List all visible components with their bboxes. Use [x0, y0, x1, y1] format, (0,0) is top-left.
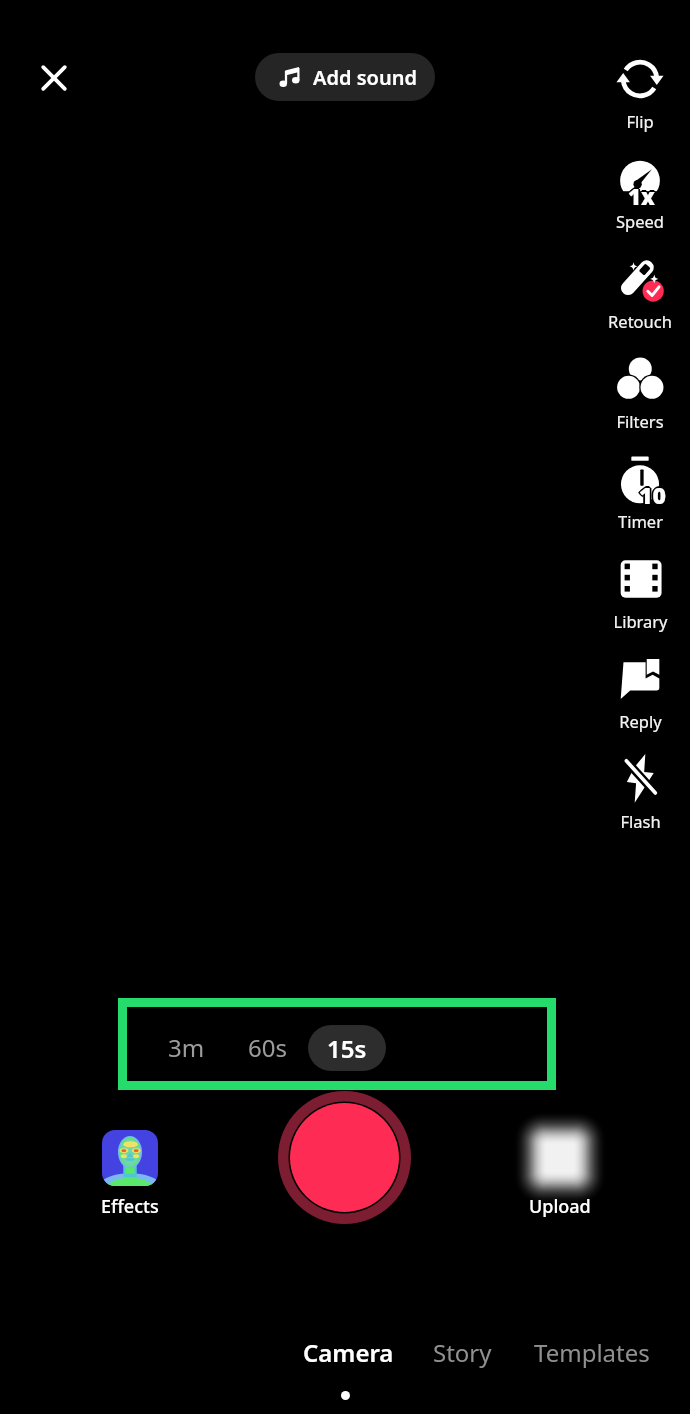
staticText: 15s [327, 1032, 367, 1065]
staticText: Templates [534, 1336, 650, 1369]
staticText: 1x [628, 181, 655, 211]
button[interactable]: Retouch [590, 251, 690, 332]
staticText: Camera [303, 1336, 394, 1369]
staticText: 1x [626, 181, 653, 211]
button[interactable]: 60s [236, 1019, 298, 1075]
button[interactable]: Library [590, 551, 690, 632]
staticText: Flash [620, 810, 661, 832]
staticText: 1x [627, 182, 654, 212]
button[interactable]: Flash [590, 751, 690, 832]
button[interactable]: Templates [524, 1326, 660, 1378]
staticText: 10 [637, 479, 664, 510]
button[interactable]: Upload [508, 1130, 612, 1219]
button[interactable]: Reply [590, 651, 690, 732]
button[interactable]: Flip [590, 51, 690, 132]
staticText: Speed [616, 210, 664, 232]
button[interactable]: Add sound [255, 53, 435, 101]
staticText: 3m [168, 1031, 205, 1064]
staticText: Library [613, 610, 668, 632]
button[interactable]: Story [424, 1326, 500, 1378]
staticText: 1x [628, 183, 655, 213]
staticText: Filters [616, 410, 664, 432]
staticText: 60s [248, 1031, 287, 1064]
staticText: 1x [630, 181, 657, 211]
button[interactable]: Close [28, 52, 80, 104]
button[interactable]: Filters [590, 351, 690, 432]
staticText: Reply [619, 710, 662, 732]
button[interactable]: Record [278, 1091, 411, 1224]
staticText: Add sound [313, 64, 417, 91]
staticText: Flip [626, 110, 654, 132]
staticText: 10 [639, 479, 666, 510]
button[interactable]: 10 [590, 451, 690, 532]
button[interactable]: Camera [292, 1326, 404, 1378]
staticText: 1x [627, 180, 654, 210]
staticText: 10 [638, 478, 665, 509]
staticText: Effects [101, 1194, 159, 1219]
staticText: Story [433, 1336, 492, 1369]
staticText: 1x [629, 180, 656, 210]
button[interactable]: 3m [158, 1019, 214, 1075]
staticText: Retouch [608, 310, 672, 332]
staticText: Timer [618, 510, 663, 532]
staticText: 1x [628, 179, 655, 209]
button[interactable]: 1x [590, 151, 690, 232]
staticText: 10 [638, 480, 665, 511]
button[interactable]: Effects [78, 1130, 182, 1219]
staticText: 10 [640, 478, 667, 509]
staticText: 1x [629, 182, 656, 212]
staticText: 10 [639, 477, 666, 508]
staticText: 10 [641, 479, 668, 510]
staticText: 10 [639, 481, 666, 512]
button[interactable]: 15s [308, 1025, 386, 1071]
staticText: 10 [640, 480, 667, 511]
staticText: Upload [529, 1194, 591, 1219]
